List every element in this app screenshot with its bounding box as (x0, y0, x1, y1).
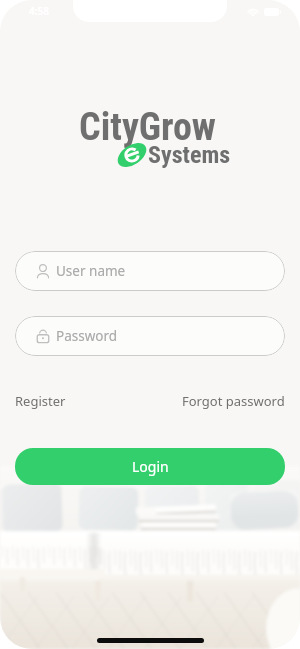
staticText: Password (56, 327, 118, 345)
staticText: Forgot password (182, 392, 285, 410)
staticText: Systems (148, 141, 231, 169)
staticText: Register (15, 392, 66, 410)
button[interactable]: User name (15, 251, 285, 291)
button[interactable]: Forgot password (182, 389, 285, 413)
staticText: CityGrow (79, 105, 216, 150)
button[interactable]: Register (15, 389, 66, 413)
button[interactable]: Password (15, 316, 285, 356)
staticText: 4:58 (29, 4, 49, 18)
button[interactable]: Login (15, 448, 285, 485)
staticText: Login (132, 457, 169, 476)
staticText: User name (56, 262, 126, 280)
